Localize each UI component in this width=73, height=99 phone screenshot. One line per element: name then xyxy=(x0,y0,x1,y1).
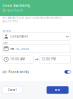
staticText: Service xyxy=(2,29,11,33)
button[interactable]: Save xyxy=(47,86,69,94)
staticText: Set your hours xyxy=(2,9,22,12)
button[interactable]: Mar 14, 2024 xyxy=(2,45,71,53)
staticText: Consultation xyxy=(8,35,28,38)
button[interactable]: Repeat weekly xyxy=(2,69,71,74)
staticText: Repeat weekly xyxy=(7,70,29,74)
staticText: 12:00 PM xyxy=(41,57,55,61)
button[interactable]: 12:00 PM xyxy=(40,55,71,63)
staticText: Save xyxy=(55,88,61,92)
button[interactable]: Consultation xyxy=(2,32,71,40)
button[interactable]: Cancel xyxy=(2,86,22,94)
staticText: Cancel xyxy=(8,88,17,92)
staticText: Mar 14, 2024 xyxy=(8,47,29,50)
staticText: 10:00 AM xyxy=(8,57,24,61)
staticText: Set availability so your customers know … xyxy=(2,16,62,23)
staticText: Date xyxy=(2,41,8,45)
staticText: Create Availability xyxy=(2,4,29,7)
button[interactable]: 10:00 AM xyxy=(2,55,33,63)
